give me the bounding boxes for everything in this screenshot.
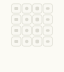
- button[interactable]: Shortcut: [32, 26, 42, 35]
- button[interactable]: Shortcut: [22, 26, 31, 35]
- button[interactable]: Shortcut: [12, 4, 21, 13]
- button[interactable]: Shortcut: [22, 4, 31, 13]
- button[interactable]: Shortcut: [43, 26, 52, 35]
- button[interactable]: Shortcut: [32, 37, 42, 46]
- button[interactable]: Shortcut: [43, 4, 52, 13]
- button[interactable]: Shortcut: [32, 4, 42, 13]
- button[interactable]: Shortcut: [22, 37, 31, 46]
- button[interactable]: Shortcut: [32, 15, 42, 24]
- button[interactable]: Shortcut: [12, 37, 21, 46]
- button[interactable]: Shortcut: [43, 15, 52, 24]
- button[interactable]: Shortcut: [12, 15, 21, 24]
- button[interactable]: Shortcut: [22, 15, 31, 24]
- button[interactable]: Shortcut: [43, 37, 52, 46]
- button[interactable]: Shortcut: [12, 26, 21, 35]
